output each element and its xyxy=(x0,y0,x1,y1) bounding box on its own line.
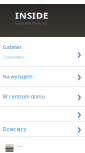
staticText: W centrum domu xyxy=(2,93,44,100)
staticText: GALERIA WNĘTRZ xyxy=(15,20,47,26)
button[interactable]: Wpis xyxy=(0,137,85,152)
staticText: Na wynajem xyxy=(2,73,32,80)
button[interactable]: Więcej xyxy=(0,107,85,122)
button[interactable]: Gabinet xyxy=(0,37,85,67)
staticText: Gabinet xyxy=(2,43,21,50)
staticText: Dziecięcy xyxy=(2,125,26,133)
button[interactable]: Dziecięcy xyxy=(0,122,85,137)
button[interactable]: Na wynajem xyxy=(0,67,85,87)
staticText: 1 komentarz xyxy=(2,54,24,60)
button[interactable]: W centrum domu xyxy=(0,87,85,107)
staticText: INSIDE xyxy=(15,9,48,21)
